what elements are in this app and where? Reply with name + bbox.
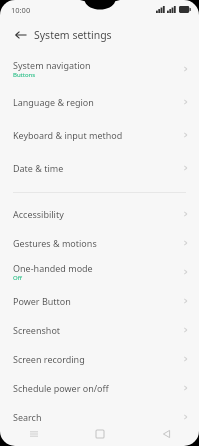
staticText: Gestures & motions xyxy=(13,237,97,249)
staticText: One-handed mode xyxy=(13,262,93,274)
button[interactable]: Accessibility xyxy=(0,199,199,228)
staticText: 10:00 xyxy=(11,5,31,15)
button[interactable]: Date & time xyxy=(0,151,199,184)
staticText: Screenshot xyxy=(13,324,61,336)
staticText: Search xyxy=(13,411,42,423)
staticText: Off xyxy=(13,274,22,282)
staticText: System navigation xyxy=(13,59,91,71)
staticText: Buttons xyxy=(13,71,36,79)
staticText: Keyboard & input method xyxy=(13,129,123,141)
staticText: Screen recording xyxy=(13,353,85,365)
button[interactable]: Recents xyxy=(0,422,67,446)
button[interactable]: Power Button xyxy=(0,286,199,315)
button[interactable]: Back xyxy=(13,27,28,42)
staticText: Date & time xyxy=(13,162,64,174)
staticText: Schedule power on/off xyxy=(13,382,109,394)
button[interactable]: Schedule power on/off xyxy=(0,373,199,402)
button[interactable]: Keyboard & input method xyxy=(0,118,199,151)
button[interactable]: Language & region xyxy=(0,85,199,118)
button[interactable]: Gestures & motions xyxy=(0,228,199,257)
staticText: Language & region xyxy=(13,96,94,108)
button[interactable]: Search xyxy=(0,402,199,431)
staticText: Power Button xyxy=(13,295,71,307)
button[interactable]: One-handed mode xyxy=(0,257,199,286)
button[interactable]: System navigation xyxy=(0,52,199,85)
button[interactable]: Screenshot xyxy=(0,315,199,344)
button[interactable]: Screen recording xyxy=(0,344,199,373)
button[interactable]: Home xyxy=(67,422,133,446)
button[interactable]: Back xyxy=(133,422,199,446)
staticText: System settings xyxy=(34,28,112,42)
staticText: Accessibility xyxy=(13,208,64,220)
